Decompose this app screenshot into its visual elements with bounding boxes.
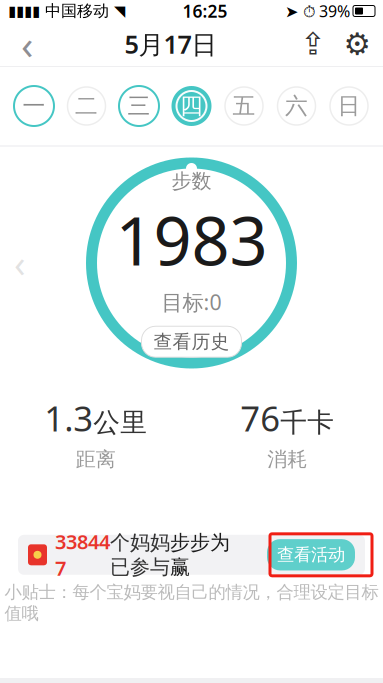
staticText: ‹ xyxy=(14,238,26,288)
staticText: 距离 xyxy=(76,447,116,472)
staticText: 三 xyxy=(127,92,150,120)
staticText: 目标:0 xyxy=(161,288,221,316)
button[interactable]: 三 xyxy=(117,84,161,128)
button[interactable]: 六 xyxy=(274,84,318,128)
button[interactable]: 四 xyxy=(169,84,213,128)
staticText: 中国移动 xyxy=(40,1,114,21)
staticText: 二 xyxy=(75,92,98,120)
button[interactable]: 日 xyxy=(327,84,371,128)
button[interactable]: Share xyxy=(291,22,335,66)
button[interactable]: Back xyxy=(4,22,50,66)
button[interactable]: 二 xyxy=(64,84,108,128)
staticText: 查看历史 xyxy=(153,330,229,353)
staticText: 五 xyxy=(232,92,255,120)
staticText: 338447 xyxy=(55,528,110,581)
staticText: 个妈妈已参与 xyxy=(110,530,170,579)
staticText: 一 xyxy=(22,92,45,120)
staticText: ⇪ xyxy=(300,27,326,61)
staticText: ▮▮▮▮ xyxy=(8,3,40,19)
staticText: 四 xyxy=(180,92,203,120)
staticText: 1983 xyxy=(115,195,267,284)
staticText: 16:25 xyxy=(182,0,227,22)
staticText: 查看活动 xyxy=(277,544,345,565)
staticText: ⚙ xyxy=(343,27,370,61)
staticText: 步数 xyxy=(171,169,211,193)
button[interactable]: 查看活动 xyxy=(267,539,355,570)
staticText: 76 xyxy=(240,395,280,441)
staticText: 小贴士：每个宝妈要视自己的情况，合理设定目标值哦 xyxy=(4,581,378,624)
staticText: 公里 xyxy=(93,406,147,439)
button[interactable]: 五 xyxy=(222,84,266,128)
staticText: 日 xyxy=(337,92,360,120)
staticText: ◥ xyxy=(114,3,125,19)
staticText: ‹ xyxy=(21,17,33,70)
staticText: 千卡 xyxy=(280,406,334,439)
staticText: 步步为赢 xyxy=(170,530,230,579)
staticText: 六 xyxy=(285,92,308,120)
button[interactable]: 一 xyxy=(12,84,56,128)
button[interactable]: Previous day xyxy=(0,238,40,288)
staticText: ➤ ⏱ 39% xyxy=(285,0,350,22)
button[interactable]: 查看历史 xyxy=(141,326,241,357)
button[interactable]: Settings xyxy=(335,22,379,66)
staticText: 5月17日 xyxy=(124,27,216,61)
staticText: 消耗 xyxy=(267,447,307,472)
staticText: 1.3 xyxy=(44,395,93,441)
